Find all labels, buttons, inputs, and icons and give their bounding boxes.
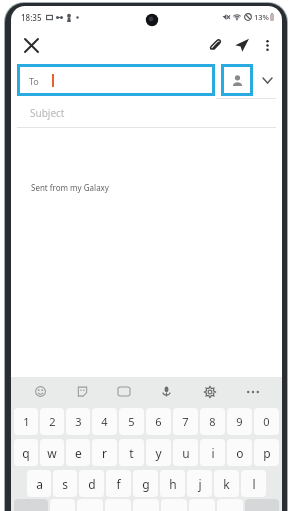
- button[interactable]: t: [119, 439, 144, 466]
- button[interactable]: Attach: [202, 32, 228, 58]
- button[interactable]: Emoji: [19, 377, 61, 406]
- staticText: Subject: [30, 106, 65, 120]
- staticText: 3: [75, 414, 82, 429]
- button[interactable]: GIF: [103, 377, 145, 406]
- button[interactable]: 7: [173, 408, 198, 435]
- button[interactable]: r: [92, 439, 117, 466]
- button[interactable]: 2: [40, 408, 64, 435]
- staticText: 1: [23, 414, 30, 429]
- staticText: d: [88, 476, 96, 492]
- button[interactable]: w: [40, 439, 64, 466]
- staticText: 13%: [254, 12, 269, 22]
- button[interactable]: 6: [146, 408, 171, 435]
- button[interactable]: Sticker: [61, 377, 103, 406]
- staticText: j: [198, 476, 202, 492]
- button[interactable]: Close: [17, 31, 45, 59]
- button[interactable]: j: [187, 470, 212, 497]
- staticText: p: [263, 445, 271, 461]
- button[interactable]: 1: [14, 408, 38, 435]
- button[interactable]: y: [146, 439, 171, 466]
- staticText: 2: [49, 414, 56, 429]
- staticText: i: [211, 445, 215, 461]
- staticText: 9: [236, 414, 243, 429]
- button[interactable]: Send: [228, 31, 256, 59]
- button[interactable]: f: [106, 470, 131, 497]
- button[interactable]: u: [173, 439, 198, 466]
- button[interactable]: More: [231, 377, 274, 406]
- button[interactable]: h: [160, 470, 185, 497]
- staticText: o: [236, 445, 244, 461]
- button[interactable]: q: [14, 439, 38, 466]
- button[interactable]: Settings: [188, 377, 231, 406]
- staticText: e: [75, 445, 82, 461]
- staticText: To: [29, 75, 39, 87]
- button[interactable]: d: [79, 470, 104, 497]
- button[interactable]: g: [133, 470, 158, 497]
- staticText: a: [36, 476, 43, 492]
- staticText: w: [47, 445, 57, 461]
- button[interactable]: i: [200, 439, 225, 466]
- staticText: 8: [209, 414, 216, 429]
- button[interactable]: To: [17, 64, 215, 96]
- staticText: k: [223, 476, 230, 492]
- staticText: y: [155, 445, 162, 461]
- button[interactable]: s: [53, 470, 77, 497]
- staticText: 4: [101, 414, 108, 429]
- button[interactable]: Voice input: [145, 377, 188, 406]
- button[interactable]: o: [227, 439, 252, 466]
- staticText: Sent from my Galaxy: [31, 182, 109, 193]
- staticText: t: [129, 445, 134, 461]
- button[interactable]: a: [27, 470, 51, 497]
- staticText: l: [252, 476, 256, 492]
- staticText: q: [22, 445, 30, 461]
- button[interactable]: 3: [66, 408, 90, 435]
- staticText: 6: [155, 414, 162, 429]
- button[interactable]: 4: [92, 408, 117, 435]
- staticText: s: [62, 476, 68, 492]
- staticText: 7: [182, 414, 189, 429]
- button[interactable]: 5: [119, 408, 144, 435]
- button[interactable]: p: [254, 439, 279, 466]
- button[interactable]: More options: [256, 34, 278, 56]
- staticText: h: [169, 476, 177, 492]
- staticText: g: [142, 476, 150, 492]
- button[interactable]: Contacts: [221, 64, 253, 96]
- staticText: 18:35: [21, 12, 42, 23]
- button[interactable]: Expand: [257, 70, 277, 90]
- staticText: 0: [263, 414, 270, 429]
- button[interactable]: k: [214, 470, 239, 497]
- button[interactable]: l: [241, 470, 266, 497]
- staticText: 5: [128, 414, 135, 429]
- button[interactable]: 9: [227, 408, 252, 435]
- staticText: r: [102, 445, 107, 461]
- button[interactable]: 8: [200, 408, 225, 435]
- staticText: f: [116, 476, 121, 492]
- button[interactable]: 0: [254, 408, 279, 435]
- staticText: u: [182, 445, 190, 461]
- button[interactable]: e: [66, 439, 90, 466]
